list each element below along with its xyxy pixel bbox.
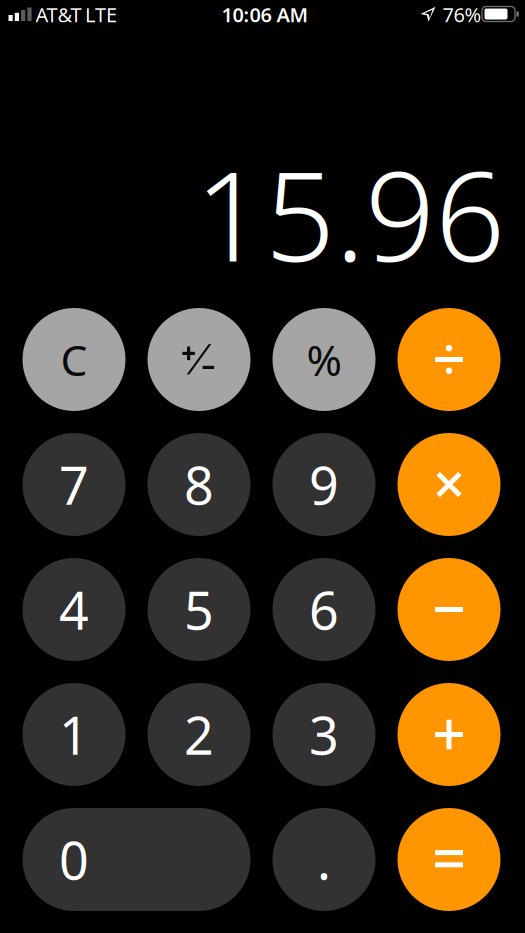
staticText: 7 bbox=[59, 450, 89, 519]
staticText: LTE bbox=[85, 1, 117, 28]
staticText: 10:06 AM bbox=[221, 1, 308, 28]
staticText: 6 bbox=[309, 575, 339, 644]
button[interactable]: 6 bbox=[272, 558, 375, 661]
button[interactable]: . bbox=[272, 808, 375, 911]
staticText: 15.96 bbox=[195, 133, 505, 295]
button[interactable]: 2 bbox=[147, 683, 250, 786]
button[interactable]: C bbox=[22, 308, 125, 411]
button[interactable]: Minus bbox=[397, 558, 500, 661]
staticText: 2 bbox=[184, 700, 214, 769]
staticText: % bbox=[306, 331, 341, 388]
staticText: 76% bbox=[442, 1, 481, 28]
button[interactable]: 4 bbox=[22, 558, 125, 661]
button[interactable]: 5 bbox=[147, 558, 250, 661]
staticText: . bbox=[317, 825, 331, 894]
staticText: 9 bbox=[309, 450, 339, 519]
button[interactable]: 1 bbox=[22, 683, 125, 786]
staticText: AT&T bbox=[35, 1, 81, 28]
button[interactable]: Plus minus bbox=[147, 308, 250, 411]
button[interactable]: % bbox=[272, 308, 375, 411]
staticText: 1 bbox=[59, 700, 89, 769]
staticText: C bbox=[60, 331, 87, 388]
button[interactable]: Plus bbox=[397, 683, 500, 786]
button[interactable]: 9 bbox=[272, 433, 375, 536]
staticText: 5 bbox=[184, 575, 214, 644]
staticText: 4 bbox=[59, 575, 89, 644]
button[interactable]: 7 bbox=[22, 433, 125, 536]
button[interactable]: Equals bbox=[397, 808, 500, 911]
button[interactable]: Divide bbox=[397, 308, 500, 411]
button[interactable]: 8 bbox=[147, 433, 250, 536]
button[interactable]: 0 bbox=[22, 808, 250, 911]
button[interactable]: Multiply bbox=[397, 433, 500, 536]
staticText: 3 bbox=[309, 700, 339, 769]
staticText: 0 bbox=[59, 825, 89, 894]
button[interactable]: 3 bbox=[272, 683, 375, 786]
staticText: 8 bbox=[184, 450, 214, 519]
